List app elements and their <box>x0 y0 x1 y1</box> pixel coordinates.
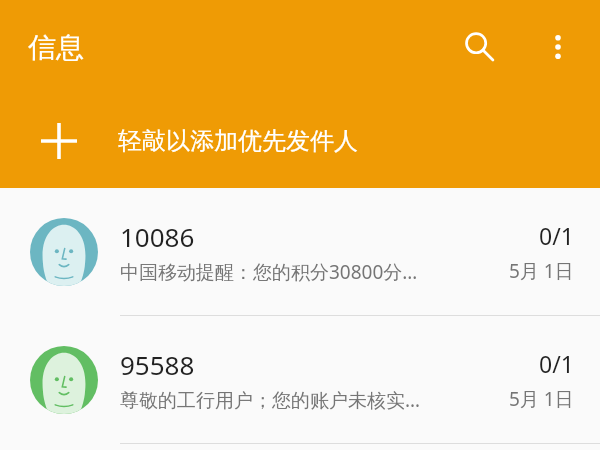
button[interactable]: More options <box>532 21 584 73</box>
staticText: 95588 <box>120 347 195 382</box>
staticText: 轻敲以添加优先发件人 <box>118 126 358 156</box>
staticText: 中国移动提醒：您的积分30800分… <box>120 259 418 285</box>
staticText: 尊敬的工行用户；您的账户未核实… <box>120 387 421 413</box>
staticText: 5月 1日 <box>509 386 574 412</box>
staticText: 0/1 <box>539 220 574 251</box>
button[interactable]: 10086 <box>0 188 600 315</box>
staticText: 信息 <box>28 30 84 65</box>
button[interactable]: Search <box>453 21 505 73</box>
button[interactable]: 95588 <box>0 316 600 443</box>
button[interactable]: 轻敲以添加优先发件人 <box>0 94 600 188</box>
staticText: 10086 <box>120 219 195 254</box>
staticText: 5月 1日 <box>509 258 574 284</box>
staticText: 0/1 <box>539 348 574 379</box>
